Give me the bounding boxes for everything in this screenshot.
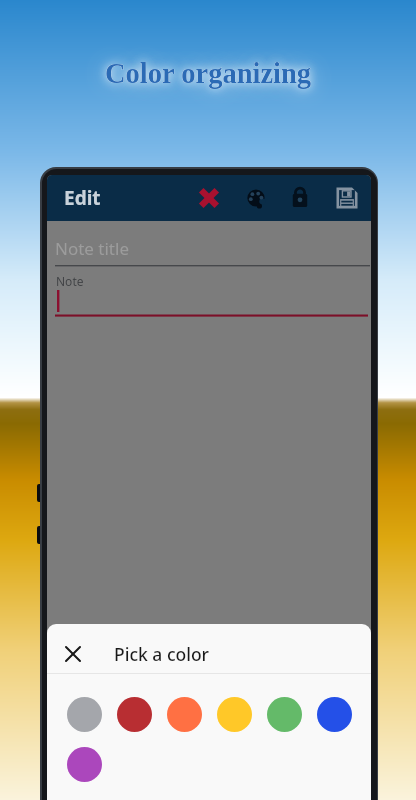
staticText: Color organizing [105,58,312,90]
button[interactable] [244,186,268,210]
button[interactable] [67,747,102,782]
staticText: Note title [55,237,129,260]
button[interactable] [167,697,202,732]
staticText: Color organizing [105,58,312,90]
button[interactable] [117,697,152,732]
button[interactable] [197,186,221,210]
button[interactable] [217,697,252,732]
button[interactable] [335,186,359,210]
staticText: Edit [64,185,101,211]
button[interactable] [317,697,352,732]
button[interactable] [288,186,312,210]
staticText: Pick a color [114,642,209,666]
button[interactable] [67,697,102,732]
staticText: Note [56,273,84,289]
button[interactable] [267,697,302,732]
button[interactable] [61,642,85,666]
